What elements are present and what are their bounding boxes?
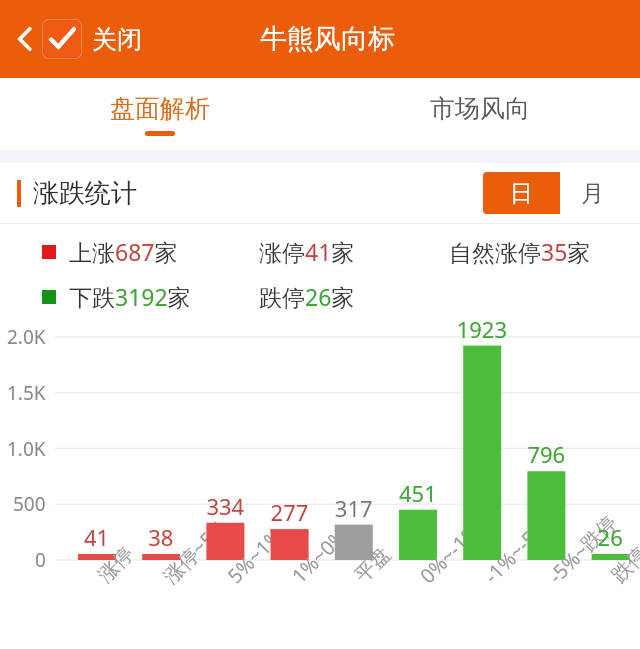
staticText: 下跌3192家 [69, 281, 191, 312]
button[interactable]: 日 [483, 172, 560, 214]
staticText: 月 [581, 179, 604, 208]
staticText: 自然涨停35家 [449, 236, 591, 267]
staticText: 盘面解析 [110, 93, 210, 124]
other: Back [14, 23, 36, 55]
staticText: 上涨687家 [69, 236, 178, 267]
staticText: 牛熊风向标 [260, 22, 395, 56]
button[interactable]: Back [10, 13, 146, 65]
staticText: 涨跌统计 [33, 177, 137, 210]
button[interactable]: 盘面解析 [0, 78, 320, 150]
staticText: 涨停41家 [259, 236, 355, 267]
button[interactable]: 市场风向 [320, 78, 640, 150]
button[interactable]: 月 [560, 172, 625, 214]
staticText: 跌停26家 [259, 281, 355, 312]
staticText: 关闭 [92, 24, 142, 55]
staticText: 日 [510, 179, 533, 208]
staticText: 市场风向 [430, 93, 530, 124]
